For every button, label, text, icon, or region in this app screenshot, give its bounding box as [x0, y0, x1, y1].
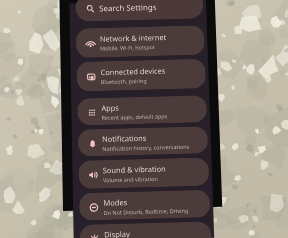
button[interactable]: Connected devices [76, 59, 206, 92]
button[interactable]: Notifications [78, 126, 208, 157]
staticText: Volume and vibration [103, 175, 159, 183]
button[interactable]: Display [79, 221, 212, 238]
staticText: Mobile, Wi-Fi, hotspot [100, 43, 155, 51]
staticText: Modes [103, 197, 128, 208]
staticText: Notification history, conversations [102, 143, 190, 152]
staticText: Apps [101, 102, 120, 113]
staticText: Sound & vibration [103, 163, 166, 175]
staticText: Recent apps, default apps [101, 112, 168, 121]
staticText: Network & internet [100, 32, 167, 44]
staticText: Display [104, 229, 131, 238]
button[interactable]: Network & internet [76, 25, 205, 58]
button[interactable]: Search Settings [75, 0, 204, 22]
staticText: Do Not Disturb, Bedtime, Driving [104, 207, 189, 216]
button[interactable]: Sound & vibration [78, 157, 209, 189]
staticText: Notifications [102, 133, 146, 144]
staticText: Connected devices [100, 66, 166, 77]
staticText: Search Settings [99, 1, 157, 13]
button[interactable]: Modes [79, 190, 210, 221]
button[interactable]: Apps [77, 95, 207, 125]
staticText: Bluetooth, pairing [101, 77, 147, 85]
